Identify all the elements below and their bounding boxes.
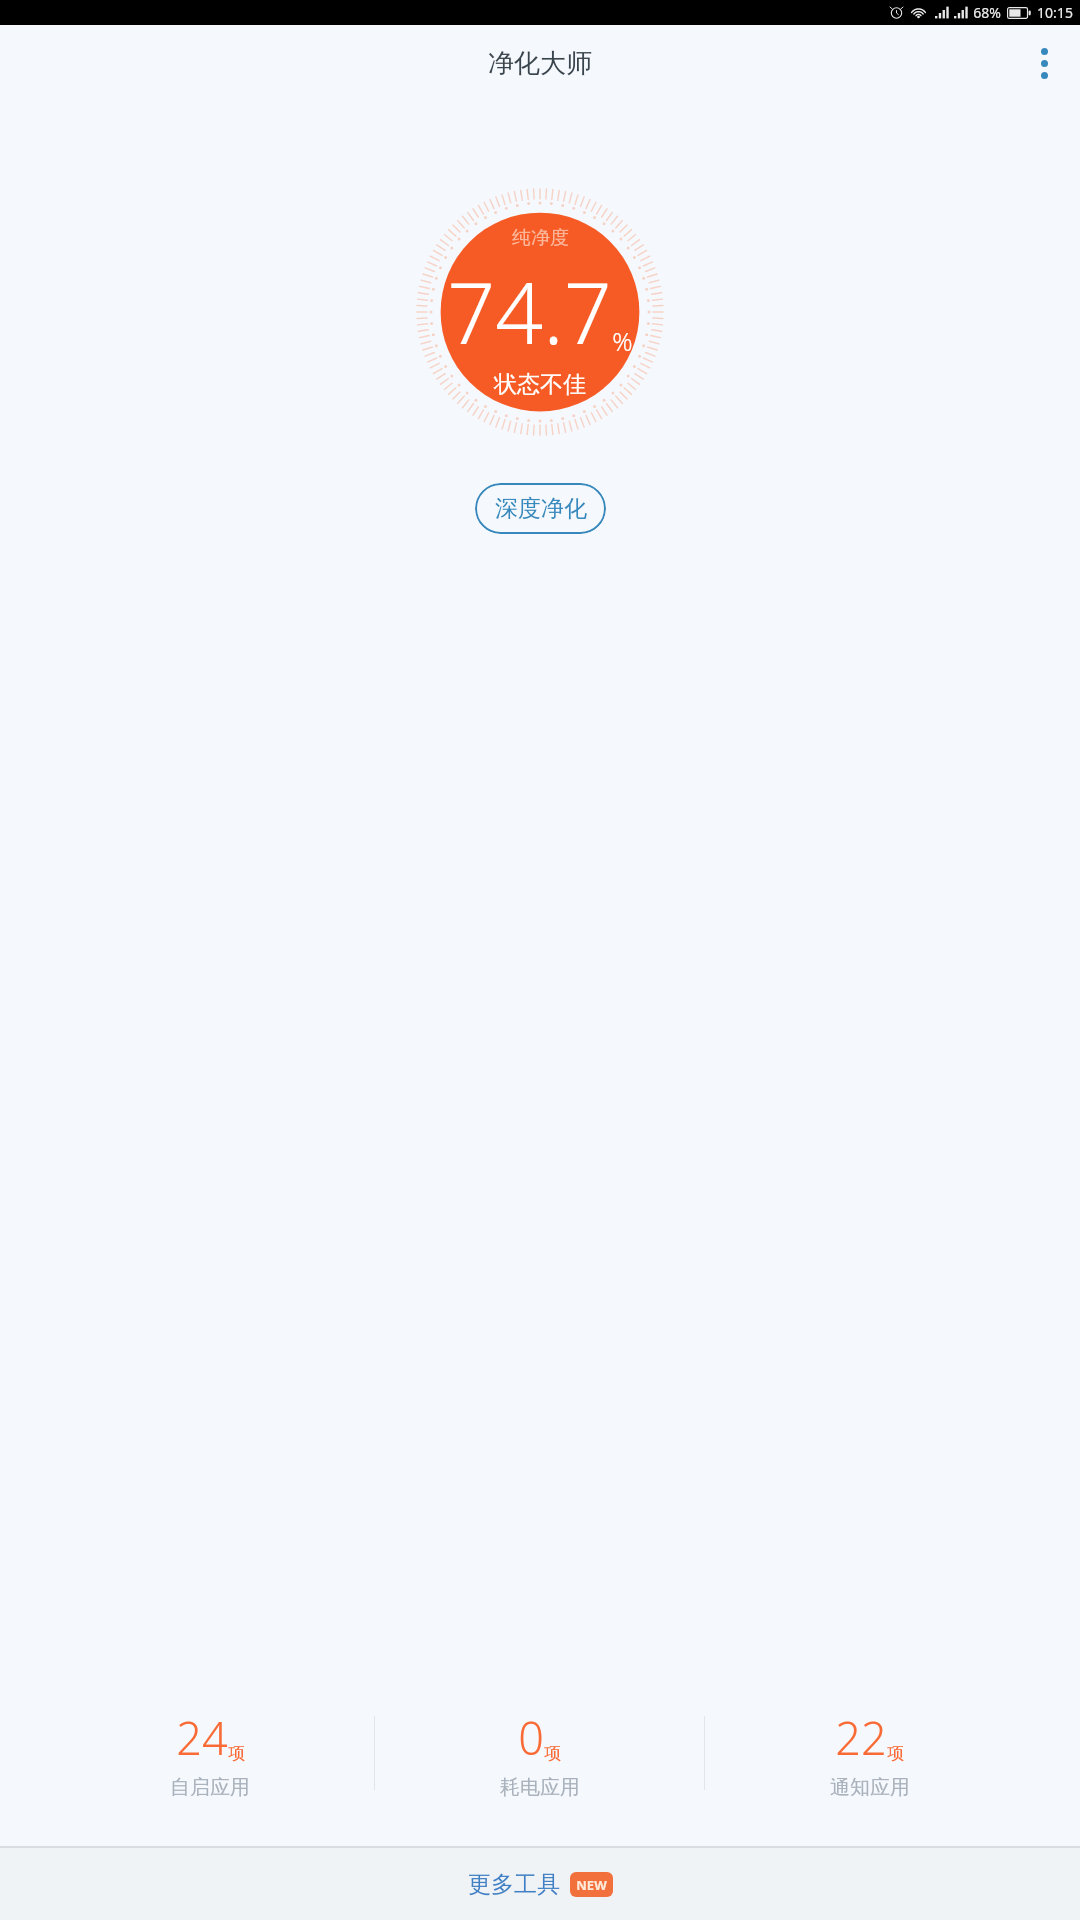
staticText: 项 [544,1743,561,1764]
staticText: 纯净度 [512,226,569,250]
staticText: 74.7 [447,254,612,368]
button[interactable]: 更多工具 [0,1848,1080,1920]
staticText: 10:15 [1037,3,1073,22]
staticText: NEW [576,1876,607,1894]
staticText: 净化大师 [488,47,592,80]
staticText: 更多工具 [468,1870,560,1899]
staticText: 通知应用 [830,1775,910,1800]
staticText: 22 [835,1707,887,1768]
button[interactable]: 0 [375,1703,704,1804]
staticText: 24 [176,1707,228,1768]
button[interactable]: More options [1020,39,1068,87]
staticText: 自启应用 [170,1775,250,1800]
staticText: 项 [228,1743,245,1764]
staticText: 项 [887,1743,904,1764]
button[interactable]: 22 [705,1703,1034,1804]
button[interactable]: 24 [46,1703,374,1804]
staticText: % [612,324,633,358]
staticText: 深度净化 [495,494,587,523]
button[interactable]: 深度净化 [475,483,606,534]
staticText: 状态不佳 [494,370,586,399]
staticText: 耗电应用 [500,1775,580,1800]
staticText: 0 [518,1707,544,1768]
staticText: 68% [973,3,1001,22]
